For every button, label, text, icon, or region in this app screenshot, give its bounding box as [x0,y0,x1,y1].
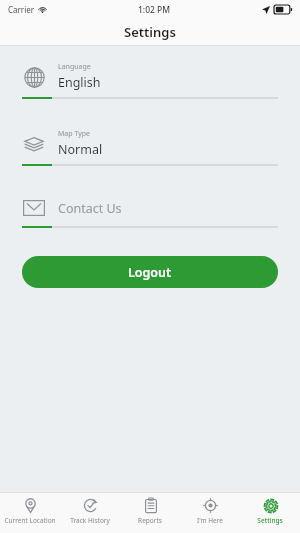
staticText: Track History [70,516,110,525]
other: Contact Us [22,196,46,220]
button[interactable]: Contact Us [0,196,300,228]
staticText: Reports [138,516,162,525]
other: Settings [262,497,279,514]
staticText: Settings [124,23,176,41]
button[interactable]: Settings [240,493,300,533]
staticText: Carrier [8,4,35,15]
other: Current Location [22,497,39,514]
button[interactable]: Track History [60,493,120,533]
button[interactable]: Map Type [0,129,300,166]
other: Language [22,65,46,89]
other: Reports [142,497,159,514]
button[interactable]: I'm Here [180,493,240,533]
button[interactable]: Logout [22,256,278,288]
staticText: Language [58,62,91,72]
button[interactable]: Reports [120,493,180,533]
staticText: Contact Us [58,200,122,217]
staticText: English [58,74,101,91]
staticText: I'm Here [197,516,223,525]
staticText: Current Location [4,516,56,525]
staticText: Normal [58,141,103,158]
staticText: Settings [257,516,283,525]
button[interactable]: Language [0,62,300,99]
other: Map Type [22,132,46,156]
staticText: Map Type [58,129,90,139]
other: I'm Here [202,497,219,514]
other: Track History [82,497,99,514]
staticText: 1:02 PM [138,4,171,16]
button[interactable]: Current Location [0,493,60,533]
staticText: Logout [128,264,172,281]
